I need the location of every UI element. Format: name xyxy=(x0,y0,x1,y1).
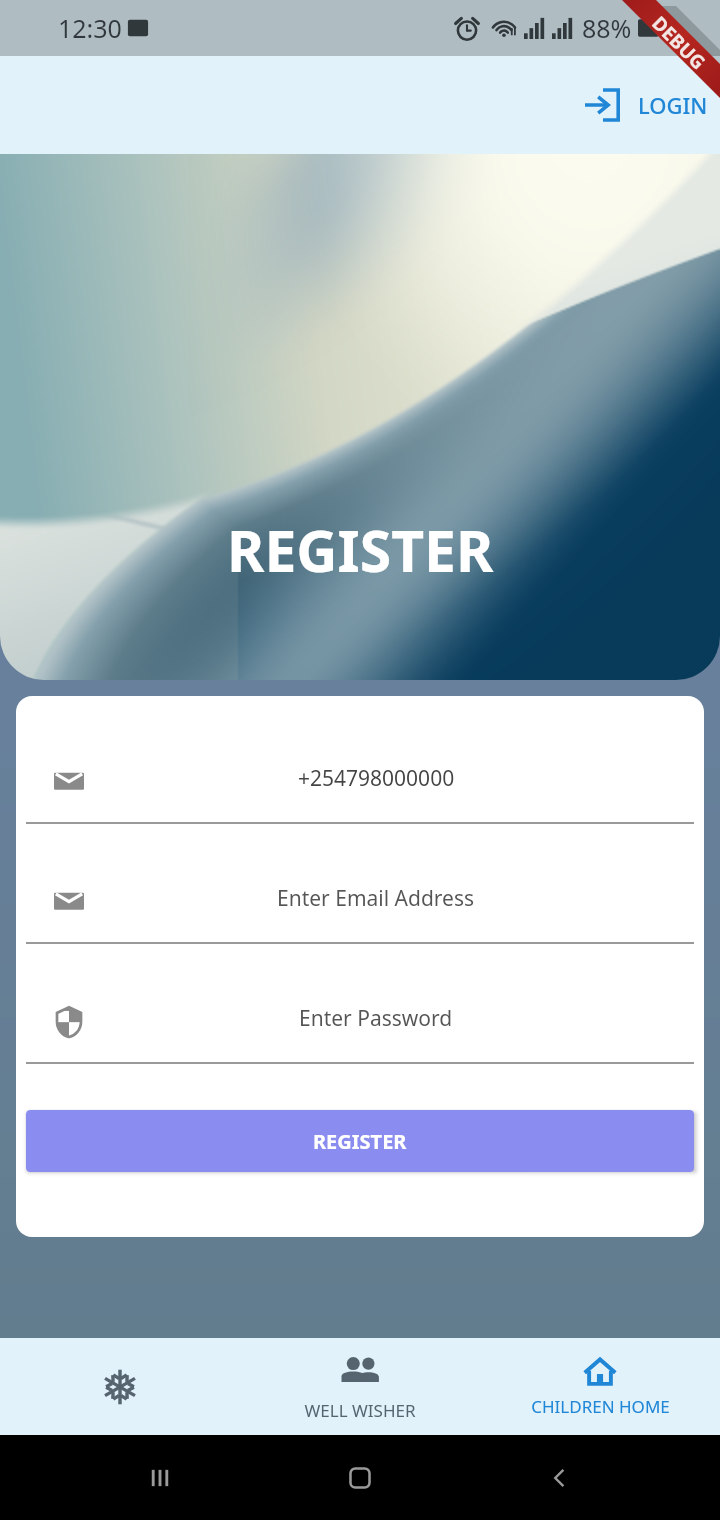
button[interactable]: Enter Email Address xyxy=(16,824,704,944)
button[interactable]: Donate xyxy=(0,1338,240,1435)
staticText: REGISTER xyxy=(227,511,494,589)
staticText: WELL WISHER xyxy=(304,1399,416,1422)
staticText: DEBUG xyxy=(646,10,712,76)
button[interactable]: CHILDREN HOME xyxy=(480,1338,720,1435)
staticText: REGISTER xyxy=(313,1128,407,1155)
button[interactable]: WELL WISHER xyxy=(240,1338,480,1435)
button[interactable]: LOGIN xyxy=(573,78,718,132)
button[interactable]: Enter Password xyxy=(16,944,704,1064)
staticText: Enter Email Address xyxy=(277,884,475,913)
staticText: 88% xyxy=(582,11,632,45)
staticText: 12:30 xyxy=(58,11,122,45)
staticText: Enter Password xyxy=(299,1004,453,1033)
staticText: CHILDREN HOME xyxy=(531,1395,670,1418)
staticText: LOGIN xyxy=(638,90,708,120)
staticText: +254798000000 xyxy=(298,764,455,793)
button[interactable]: REGISTER xyxy=(26,1110,694,1172)
button[interactable]: +254798000000 xyxy=(16,704,704,824)
